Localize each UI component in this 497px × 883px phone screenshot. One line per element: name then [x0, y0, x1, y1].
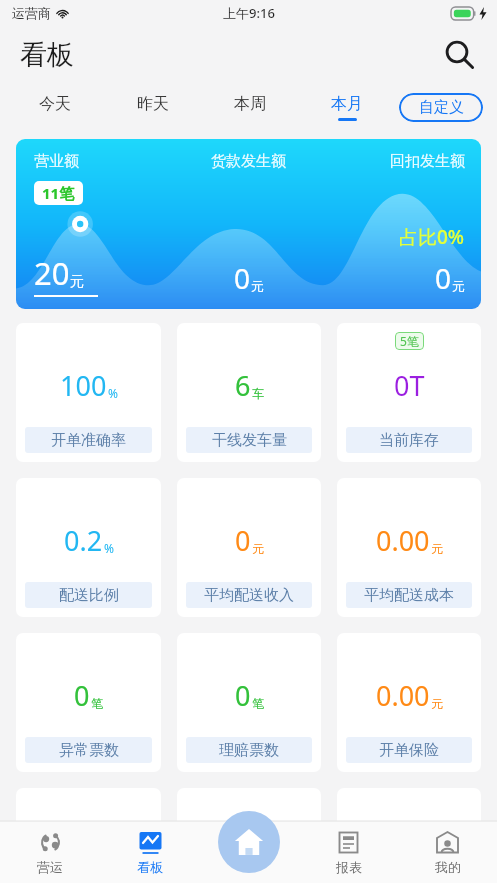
staticText: 运营商 — [12, 5, 51, 21]
button[interactable]: 0 — [16, 633, 161, 772]
staticText: 平均配送收入 — [204, 586, 294, 605]
button[interactable]: 0 — [177, 633, 321, 772]
button[interactable]: 昨天 — [104, 84, 201, 130]
staticText: 元 — [452, 278, 465, 294]
staticText: 开单保险 — [379, 741, 439, 760]
button[interactable]: 0 — [177, 478, 321, 617]
button[interactable]: 6 — [177, 323, 321, 462]
staticText: 当前库存 — [379, 431, 439, 450]
button[interactable]: Home — [218, 811, 280, 873]
button[interactable]: Search — [437, 32, 483, 78]
button[interactable]: 5笔 — [337, 323, 481, 462]
staticText: 元 — [431, 696, 443, 711]
button[interactable]: 我的 — [398, 821, 497, 883]
staticText: 货款发生额 — [171, 152, 326, 171]
button[interactable] — [16, 788, 161, 848]
button[interactable]: 本周 — [201, 84, 298, 130]
button[interactable]: 0.00 — [337, 633, 481, 772]
staticText: 元 — [251, 278, 264, 294]
staticText: 干线发车量 — [212, 431, 287, 450]
staticText: 0.00 — [376, 677, 430, 714]
staticText: 异常票数 — [59, 741, 119, 760]
staticText: 回扣发生额 — [326, 152, 465, 171]
staticText: 0 — [74, 677, 90, 714]
staticText: 我的 — [435, 859, 461, 875]
button[interactable]: 0.2 — [16, 478, 161, 617]
staticText: 看板 — [20, 38, 74, 72]
button[interactable]: 报表 — [299, 821, 398, 883]
staticText: 0.00 — [376, 522, 430, 559]
button[interactable]: 营运 — [0, 821, 100, 883]
staticText: 0 — [235, 677, 251, 714]
button[interactable] — [337, 788, 481, 848]
staticText: 0 — [435, 259, 452, 297]
staticText: 自定义 — [419, 98, 464, 117]
staticText: 0 — [234, 259, 251, 297]
button[interactable]: 看板 — [100, 821, 200, 883]
staticText: 开单准确率 — [51, 431, 126, 450]
staticText: 笔 — [91, 696, 103, 711]
button[interactable]: 营业额 — [16, 139, 481, 309]
button[interactable] — [177, 788, 321, 848]
staticText: % — [104, 540, 114, 556]
staticText: 今天 — [39, 94, 71, 114]
staticText: 元 — [252, 541, 264, 556]
staticText: 营运 — [37, 859, 63, 875]
staticText: 5笔 — [400, 333, 419, 349]
staticText: 占比0% — [399, 224, 465, 250]
staticText: 100 — [60, 367, 107, 404]
staticText: 本周 — [234, 94, 266, 114]
staticText: 理赔票数 — [219, 741, 279, 760]
staticText: 上午9:16 — [223, 4, 275, 22]
staticText: 元 — [70, 273, 84, 291]
button[interactable]: 0.00 — [337, 478, 481, 617]
staticText: 昨天 — [137, 94, 169, 114]
button[interactable]: 100 — [16, 323, 161, 462]
button[interactable]: 今天 — [6, 84, 104, 130]
staticText: 营业额 — [34, 152, 171, 171]
staticText: 11笔 — [42, 183, 75, 203]
staticText: 6 — [235, 367, 251, 404]
staticText: 0 — [235, 522, 251, 559]
staticText: % — [108, 385, 118, 401]
staticText: 本月 — [331, 94, 363, 114]
staticText: 平均配送成本 — [364, 586, 454, 605]
staticText: 0T — [394, 367, 425, 404]
staticText: 车 — [252, 386, 264, 401]
staticText: 配送比例 — [59, 586, 119, 605]
staticText: 看板 — [137, 859, 163, 875]
staticText: 元 — [431, 541, 443, 556]
staticText: 20 — [34, 252, 70, 294]
button[interactable]: 本月 — [298, 84, 395, 130]
staticText: 0.2 — [64, 522, 103, 559]
staticText: 笔 — [252, 696, 264, 711]
staticText: 报表 — [336, 859, 362, 875]
button[interactable]: 自定义 — [399, 93, 483, 122]
